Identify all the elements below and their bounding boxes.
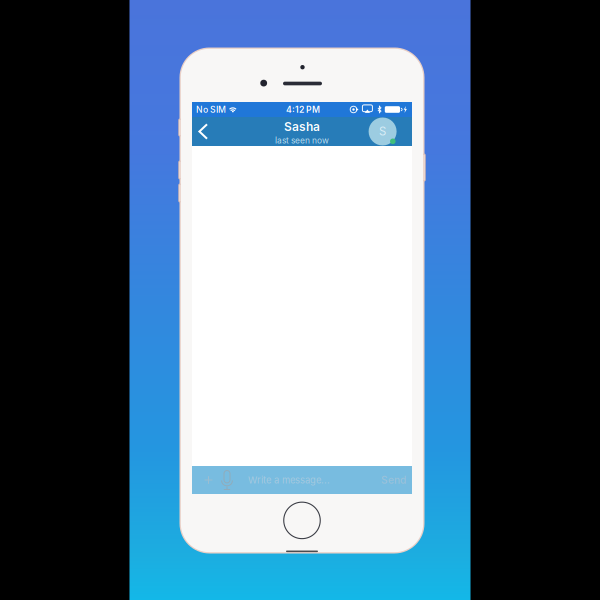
button[interactable]: Attach xyxy=(201,467,216,493)
staticText: 4:12 PM xyxy=(286,104,320,115)
button[interactable]: Contact info xyxy=(369,117,397,146)
staticText: Write a message... xyxy=(248,474,330,486)
staticText: S xyxy=(379,125,386,138)
button[interactable]: Voice message xyxy=(216,467,238,493)
staticText: last seen now xyxy=(275,135,329,146)
button[interactable]: Send xyxy=(379,467,408,493)
staticText: Sasha xyxy=(284,119,320,134)
staticText: No SIM xyxy=(196,104,226,115)
staticText: Send xyxy=(381,474,406,486)
button[interactable]: Back xyxy=(192,117,214,146)
